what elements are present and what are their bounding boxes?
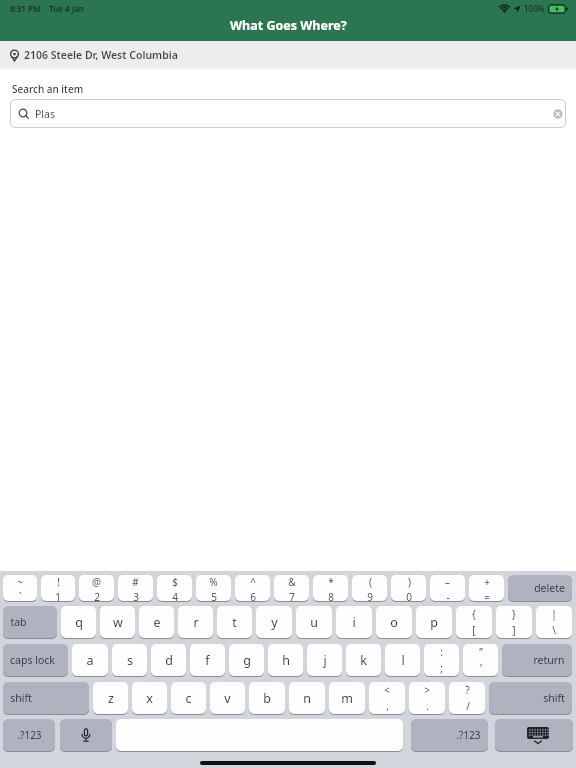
button[interactable]: f [190,644,225,676]
staticText: ! [57,575,60,589]
staticText: - [446,590,450,601]
button[interactable]: & [274,575,309,601]
staticText: 1 [55,590,61,601]
button[interactable]: shift [3,682,89,714]
button[interactable] [116,719,403,751]
button[interactable]: # [118,575,153,601]
button[interactable]: ) [391,575,426,601]
button[interactable]: n [289,682,325,714]
staticText: 100% [524,3,545,14]
button[interactable]: < [369,682,405,714]
button[interactable]: % [196,575,231,601]
button[interactable]: w [100,606,135,638]
staticText: ) [408,575,411,589]
button[interactable]: $ [157,575,192,601]
button[interactable]: delete [508,575,572,601]
button[interactable]: z [93,682,128,714]
button[interactable]: m [329,682,365,714]
button[interactable]: ” [463,644,498,676]
button[interactable]: l [385,644,420,676]
staticText: y [271,614,278,631]
button[interactable]: t [217,606,252,638]
button[interactable]: caps lock [3,644,68,676]
button[interactable]: v [210,682,245,714]
button[interactable]: @ [79,575,114,601]
button[interactable]: q [61,606,96,638]
button[interactable]: 2106 Steele Dr, West Columbia [0,41,576,69]
button[interactable] [550,106,566,122]
staticText: caps lock [10,653,55,667]
staticText: * [328,575,334,589]
staticText: – [445,575,450,589]
staticText: w [113,614,123,631]
button[interactable] [495,719,573,751]
button[interactable]: } [496,606,532,638]
staticText: u [310,614,318,631]
button[interactable] [60,719,112,751]
staticText: .?123 [456,728,481,742]
staticText: r [193,614,199,631]
button[interactable]: Plas [10,99,566,128]
staticText: o [390,614,398,631]
button[interactable]: return [502,644,572,676]
button[interactable]: k [346,644,381,676]
button[interactable]: c [171,682,206,714]
staticText: @ [92,575,101,589]
button[interactable]: ~ [3,575,37,601]
button[interactable]: h [268,644,303,676]
button[interactable]: j [307,644,342,676]
button[interactable]: .?123 [411,719,488,751]
button[interactable]: ? [449,682,485,714]
staticText: b [263,690,271,707]
button[interactable]: ( [352,575,387,601]
button[interactable]: i [336,606,372,638]
button[interactable]: ^ [235,575,270,601]
staticText: ” [479,645,483,659]
staticText: Plas [35,107,55,121]
button[interactable]: + [469,575,504,601]
button[interactable]: { [456,606,492,638]
staticText: d [165,652,173,669]
staticText: a [86,652,94,669]
button[interactable]: g [229,644,264,676]
staticText: f [205,652,210,669]
staticText: q [75,614,83,631]
button[interactable]: > [409,682,445,714]
button[interactable]: – [430,575,465,601]
button[interactable]: * [313,575,348,601]
staticText: , [386,699,389,713]
button[interactable]: | [536,606,572,638]
button[interactable]: d [151,644,186,676]
button[interactable]: p [416,606,452,638]
button[interactable]: a [72,644,108,676]
button[interactable]: b [249,682,285,714]
button[interactable]: y [256,606,292,638]
staticText: = [484,590,490,601]
staticText: # [132,575,139,589]
button[interactable]: o [376,606,412,638]
button[interactable]: x [132,682,167,714]
button[interactable]: e [139,606,174,638]
staticText: 0 [406,590,412,601]
button[interactable]: : [424,644,459,676]
staticText: 7 [289,590,295,601]
button[interactable]: ! [41,575,75,601]
button[interactable]: s [112,644,147,676]
staticText: j [323,652,327,669]
staticText: ` [19,590,22,601]
staticText: ^ [250,575,256,589]
button[interactable]: tab [3,606,57,638]
staticText: v [224,690,231,707]
staticText: 2 [94,590,100,601]
staticText: 6 [250,590,256,601]
staticText: z [108,690,114,707]
staticText: ; [440,661,443,675]
button[interactable]: u [296,606,332,638]
button[interactable]: .?123 [3,719,55,751]
button[interactable]: shift [489,682,572,714]
staticText: shift [543,691,565,705]
staticText: m [341,690,353,707]
button[interactable]: r [178,606,213,638]
staticText: / [466,699,470,713]
staticText: Tue 4 Jan [49,3,84,14]
